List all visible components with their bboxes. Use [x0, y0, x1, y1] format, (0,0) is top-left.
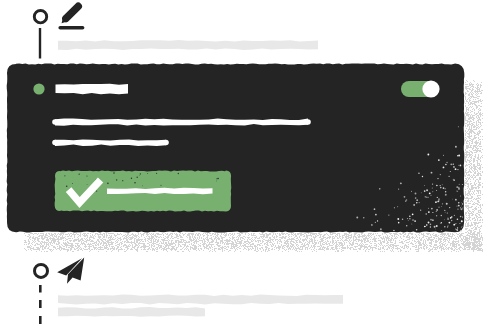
button[interactable]: Confirm — [55, 171, 231, 211]
button[interactable]: Toggle notifications, on — [399, 77, 441, 99]
button[interactable]: Confirm — [7, 64, 464, 232]
button[interactable]: Send — [55, 254, 87, 286]
button[interactable]: Edit — [56, 0, 88, 32]
